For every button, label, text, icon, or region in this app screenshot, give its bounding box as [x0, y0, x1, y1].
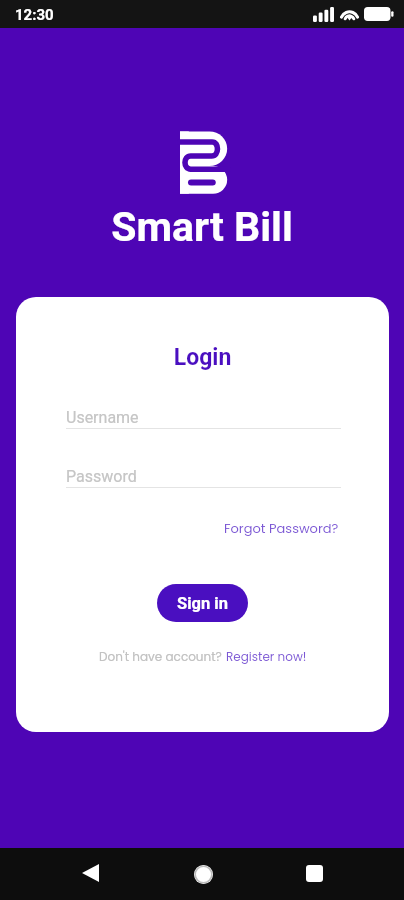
staticText: 12:30 [15, 6, 54, 24]
button[interactable]: Recent apps [296, 855, 332, 891]
staticText: Register now! [226, 648, 307, 665]
staticText: Smart Bill [0, 203, 404, 251]
button[interactable]: Home [185, 856, 221, 892]
button[interactable]: Sign in [157, 584, 248, 622]
staticText: Username [66, 408, 139, 427]
staticText: Password [66, 467, 137, 486]
button[interactable]: Back [72, 855, 108, 891]
staticText: Login [16, 344, 389, 371]
staticText: Don't have account? [99, 648, 226, 665]
button[interactable]: Forgot Password? [224, 519, 339, 537]
button[interactable]: Username [66, 408, 341, 429]
button[interactable]: Password [66, 467, 341, 488]
staticText: Sign in [177, 594, 228, 613]
staticText: Forgot Password? [224, 519, 339, 537]
button[interactable]: Register now! [226, 648, 307, 665]
